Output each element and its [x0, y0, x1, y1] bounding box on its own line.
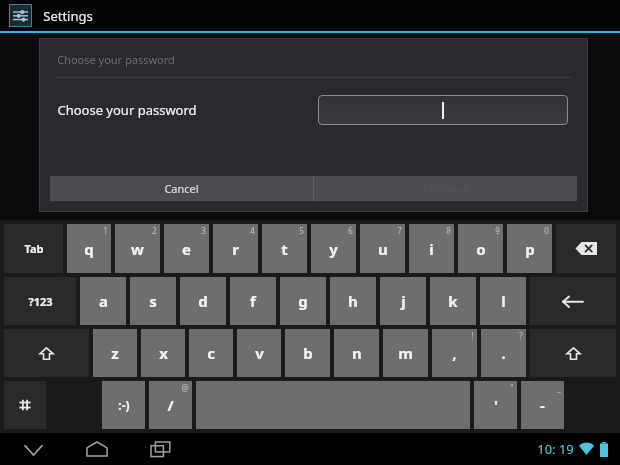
button[interactable]: q [67, 224, 111, 273]
button[interactable]: k [430, 277, 476, 325]
button[interactable]: e [164, 224, 209, 273]
staticText: Cancel [164, 181, 199, 196]
staticText: / [167, 395, 174, 415]
staticText: m [398, 343, 413, 363]
staticText: h [348, 291, 358, 311]
button[interactable]: , [432, 329, 477, 377]
button[interactable]: ' [474, 381, 517, 429]
button[interactable]: f [230, 277, 276, 325]
button[interactable]: / [149, 381, 192, 429]
other: Settings icon [9, 4, 32, 27]
staticText: Settings [43, 7, 93, 25]
button[interactable]: t [262, 224, 307, 273]
button[interactable]: y [311, 224, 356, 273]
staticText: 8 [446, 225, 451, 236]
button[interactable]: l [480, 277, 526, 325]
button[interactable]: g [280, 277, 326, 325]
button[interactable]: ime [4, 381, 46, 429]
button[interactable]: m [383, 329, 428, 377]
button[interactable]: a [80, 277, 126, 325]
button[interactable]: i [409, 224, 454, 273]
staticText: o [476, 239, 486, 259]
staticText: b [303, 343, 313, 363]
staticText: , [452, 343, 457, 363]
button[interactable]: del [556, 224, 616, 273]
staticText: d [198, 291, 208, 311]
staticText: 9 [495, 225, 500, 236]
staticText: 7 [397, 225, 402, 236]
staticText: ' [494, 395, 498, 415]
staticText: x [159, 343, 168, 363]
staticText: 3 [201, 225, 206, 236]
staticText: v [255, 343, 264, 363]
staticText: 2 [152, 225, 157, 236]
staticText: Choose your password [57, 101, 197, 119]
button[interactable]: :-) [102, 381, 145, 429]
button[interactable]: shift [530, 329, 616, 377]
staticText: f [250, 291, 256, 311]
staticText: Choose your password [57, 52, 175, 67]
staticText: a [99, 291, 108, 311]
staticText: w [131, 239, 144, 259]
staticText: 5 [299, 225, 304, 236]
staticText: Tab [24, 241, 44, 256]
staticText: - [540, 395, 545, 415]
staticText: 0 [544, 225, 549, 236]
staticText: :-) [118, 397, 130, 413]
staticText: n [352, 343, 362, 363]
button[interactable]: d [180, 277, 226, 325]
staticText: u [378, 239, 388, 259]
button[interactable]: Back [10, 433, 56, 465]
button[interactable]: enter [530, 277, 616, 325]
staticText: k [448, 291, 458, 311]
staticText: t [281, 239, 288, 259]
staticText: 1 [103, 225, 108, 236]
staticText: y [329, 239, 338, 259]
staticText: @ [181, 382, 189, 393]
button[interactable]: Home [74, 433, 120, 465]
staticText: e [182, 239, 191, 259]
button[interactable]: u [360, 224, 405, 273]
staticText: . [501, 343, 506, 363]
button[interactable]: z [93, 329, 137, 377]
button[interactable]: x [141, 329, 185, 377]
staticText: c [207, 343, 215, 363]
staticText: ! [471, 330, 474, 341]
button[interactable]: Recent apps [138, 433, 184, 465]
button[interactable]: Tab [4, 224, 63, 273]
staticText: ? [519, 330, 523, 341]
staticText: ?123 [28, 294, 53, 309]
staticText: s [149, 291, 157, 311]
staticText: p [525, 239, 535, 259]
button[interactable]: ?123 [4, 277, 76, 325]
staticText: i [429, 239, 434, 259]
staticText: g [298, 291, 308, 311]
button[interactable]: o [458, 224, 503, 273]
staticText: q [84, 239, 94, 259]
staticText: 6 [348, 225, 353, 236]
staticText: _ [557, 382, 561, 393]
button[interactable]: p [507, 224, 552, 273]
staticText: l [501, 291, 506, 311]
button[interactable]: shift [4, 329, 89, 377]
button[interactable]: j [380, 277, 426, 325]
staticText: j [401, 291, 406, 311]
button[interactable]: c [189, 329, 233, 377]
button[interactable]: b [285, 329, 330, 377]
staticText: z [111, 343, 119, 363]
button[interactable]: - [521, 381, 564, 429]
button[interactable]: h [330, 277, 376, 325]
button[interactable]: n [334, 329, 379, 377]
button[interactable]: Cancel [50, 176, 313, 201]
button[interactable]: s [130, 277, 176, 325]
button[interactable]: w [115, 224, 160, 273]
button[interactable]: r [213, 224, 258, 273]
button[interactable]: . [481, 329, 526, 377]
staticText: r [232, 239, 239, 259]
button[interactable]: v [237, 329, 281, 377]
button[interactable]: Password field [318, 95, 568, 125]
staticText: " [510, 382, 514, 393]
